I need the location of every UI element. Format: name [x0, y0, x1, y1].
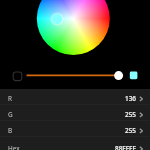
staticText: 136 — [125, 94, 136, 103]
staticText: 88FFFF — [115, 144, 136, 150]
button[interactable]: Hex — [0, 137, 150, 150]
button[interactable]: B — [0, 121, 150, 137]
staticText: R — [8, 94, 12, 103]
staticText: 255 — [125, 110, 136, 119]
button[interactable]: G — [0, 105, 150, 121]
staticText: B — [8, 126, 13, 135]
button[interactable]: Transparent — [12, 71, 22, 81]
button[interactable]: R — [0, 89, 150, 105]
staticText: G — [8, 110, 13, 119]
staticText: Hex — [8, 144, 20, 150]
button[interactable]: Colour wheel — [0, 0, 150, 60]
staticText: 255 — [125, 126, 136, 135]
